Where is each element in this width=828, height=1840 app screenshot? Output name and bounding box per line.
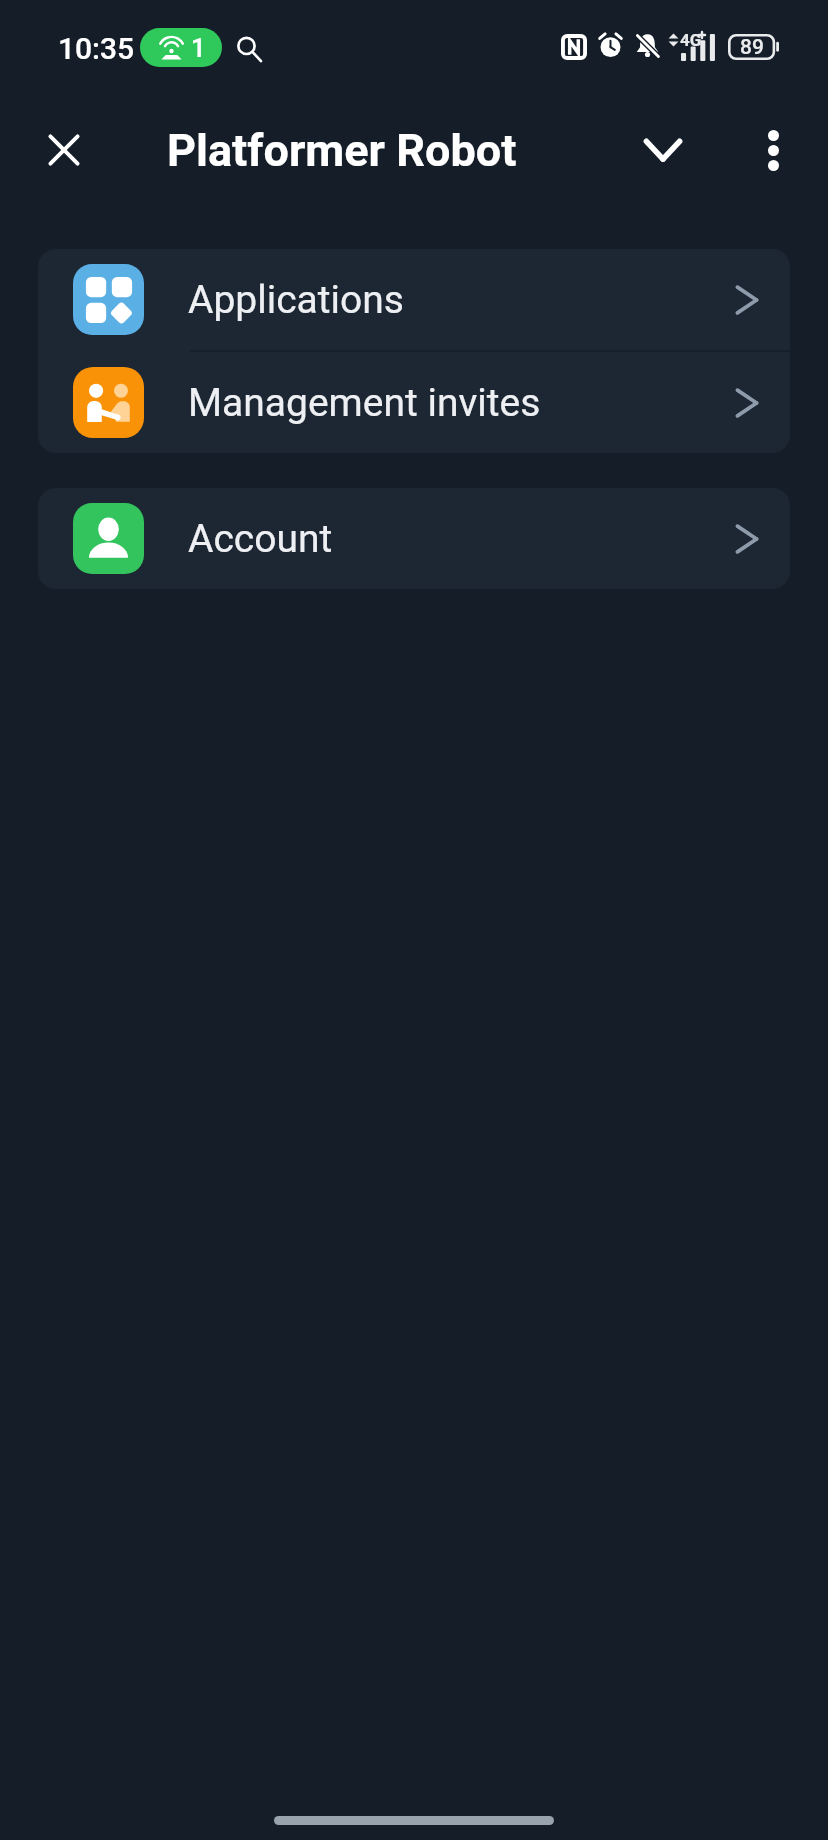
staticText: 89	[740, 35, 764, 60]
button[interactable]: Close	[28, 114, 100, 186]
button[interactable]: Management invites	[38, 352, 790, 453]
button[interactable]: Applications	[38, 249, 790, 350]
staticText: 1	[191, 33, 206, 63]
staticText: 10:35	[58, 31, 135, 66]
staticText: Management invites	[188, 380, 541, 426]
button[interactable]: Expand	[627, 114, 699, 186]
staticText: 4G	[680, 30, 702, 50]
button[interactable]: Account	[38, 488, 790, 589]
staticText: Platformer Robot	[167, 124, 517, 177]
staticText: Applications	[188, 277, 404, 323]
button[interactable]: More options	[737, 114, 809, 186]
staticText: Account	[188, 516, 333, 562]
